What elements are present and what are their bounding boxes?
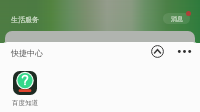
button[interactable]: 快捷中心	[10, 47, 44, 59]
staticText: 生活服务	[11, 15, 39, 24]
button[interactable]: 消息	[163, 13, 190, 24]
staticText: 消息	[171, 15, 183, 23]
button[interactable]: Collapse	[149, 43, 166, 60]
button[interactable]: More options	[176, 43, 193, 60]
button[interactable]: 百度知道	[12, 71, 38, 107]
staticText: 百度知道	[12, 99, 38, 107]
button[interactable]: 生活服务	[10, 14, 40, 25]
staticText: 快捷中心	[11, 48, 43, 58]
